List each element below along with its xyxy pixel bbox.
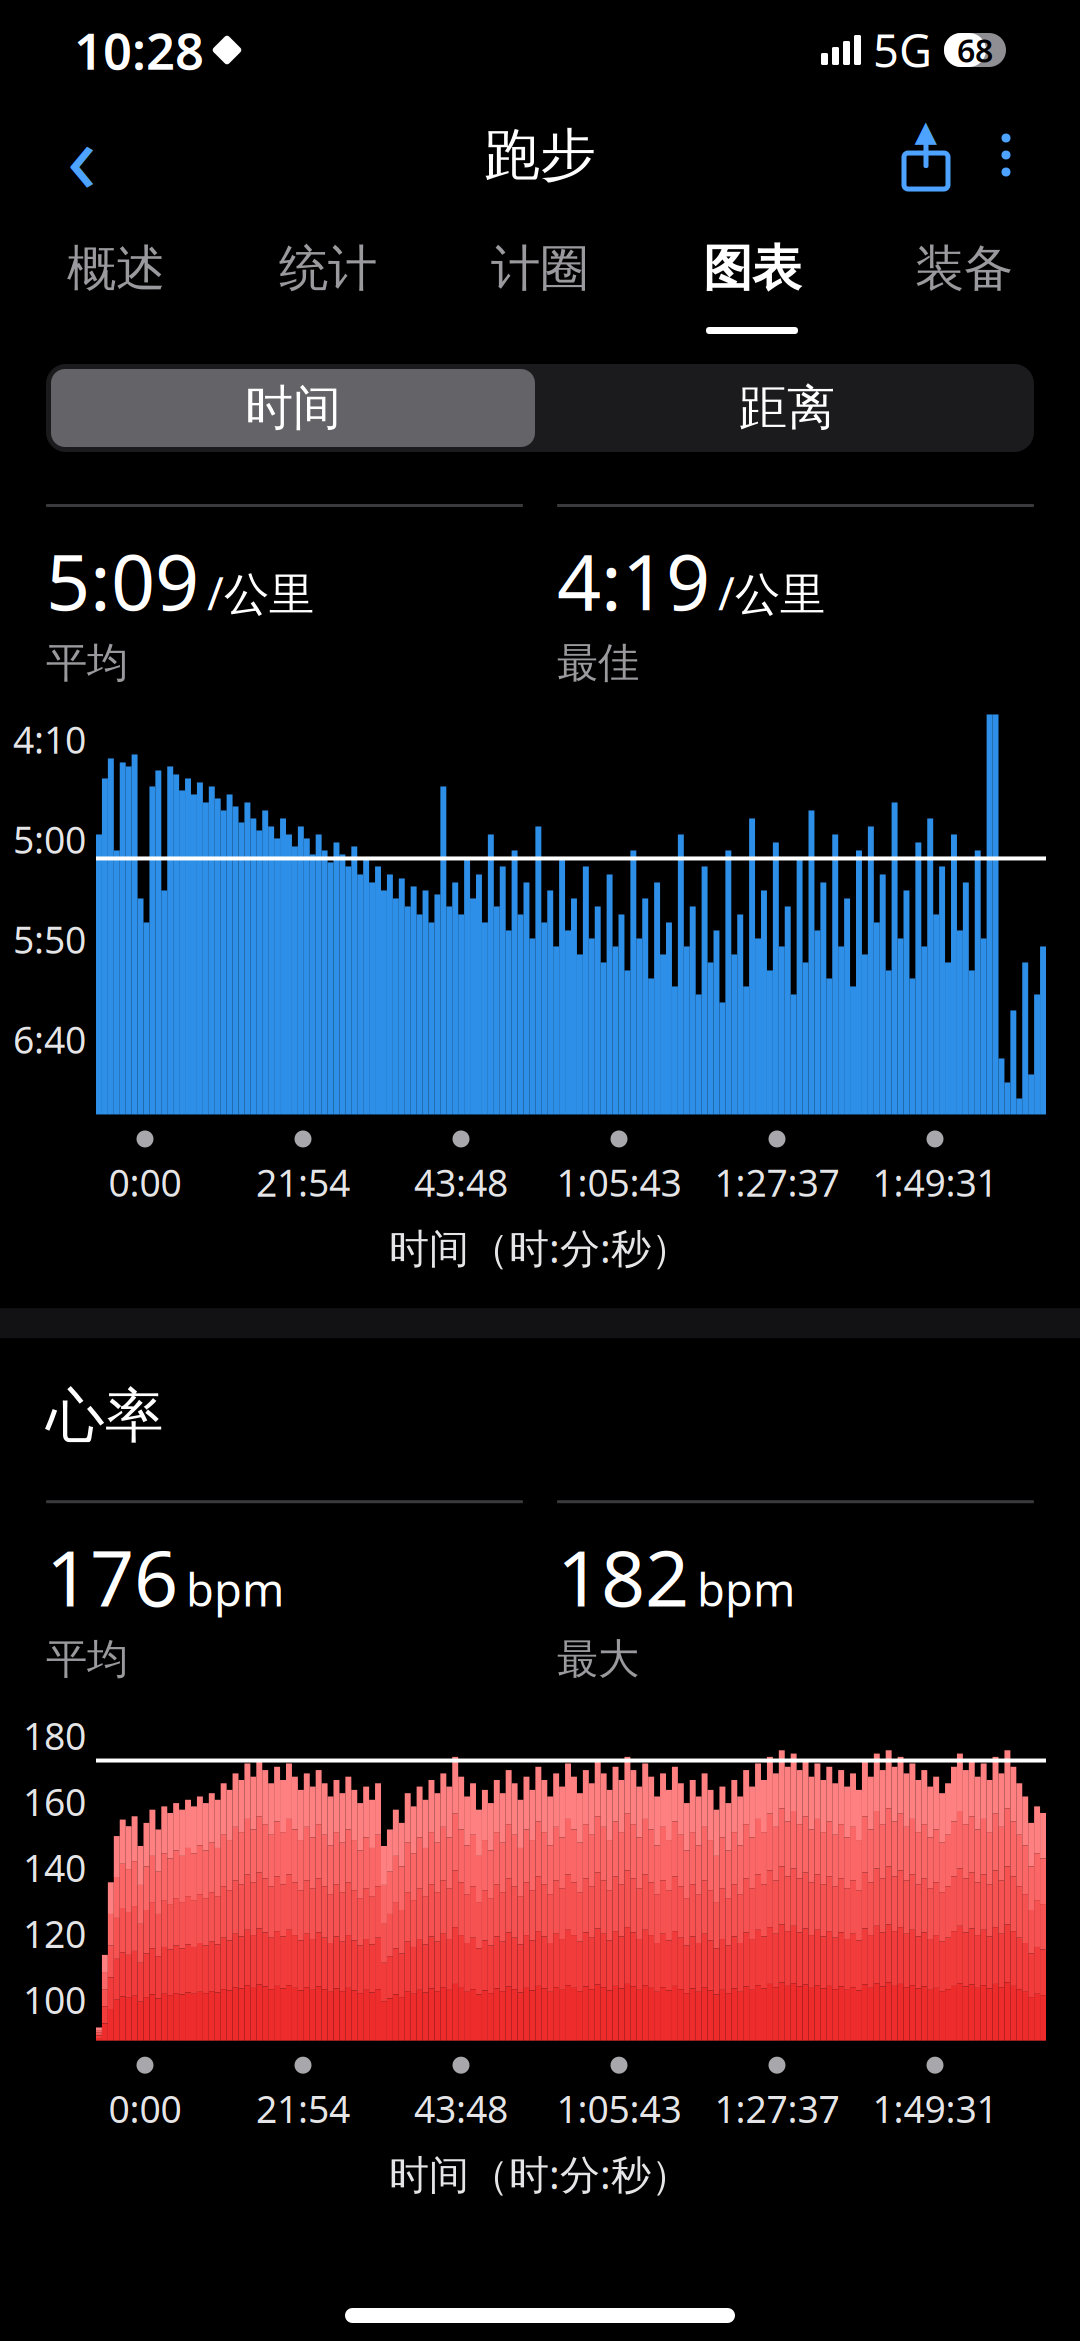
- staticText: 68: [957, 29, 993, 71]
- staticText: 100: [23, 1975, 86, 2024]
- button[interactable]: 概述: [10, 210, 222, 350]
- button[interactable]: 图表: [646, 210, 858, 350]
- button[interactable]: 更多选项: [966, 107, 1046, 203]
- staticText: ‹: [66, 89, 97, 220]
- staticText: ▲: [914, 114, 937, 148]
- staticText: 0:00: [108, 1157, 181, 1207]
- staticText: 1:05:43: [556, 1157, 681, 1207]
- staticText: 心率: [46, 1380, 164, 1452]
- staticText: 图表: [703, 238, 801, 299]
- staticText: 时间: [245, 378, 341, 437]
- staticText: 5:00: [13, 814, 86, 864]
- staticText: 4:10: [13, 714, 86, 764]
- staticText: 计圈: [491, 238, 589, 299]
- staticText: 概述: [67, 238, 165, 299]
- staticText: 21:54: [256, 2084, 350, 2133]
- staticText: 时间（时:分:秒）: [389, 2147, 691, 2200]
- staticText: 160: [23, 1777, 86, 1826]
- staticText: 1:05:43: [556, 2084, 681, 2133]
- staticText: 1:49:31: [872, 1157, 997, 1207]
- staticText: 180: [23, 1711, 86, 1760]
- staticText: 时间（时:分:秒）: [389, 1221, 691, 1274]
- staticText: 5:50: [13, 914, 86, 964]
- staticText: 装备: [915, 238, 1013, 299]
- staticText: bpm: [186, 1559, 284, 1619]
- staticText: 0:00: [108, 2084, 181, 2133]
- staticText: 平均: [46, 1634, 128, 1685]
- staticText: 4:19: [557, 529, 710, 632]
- staticText: 6:40: [13, 1014, 86, 1064]
- button[interactable]: 分享: [886, 107, 966, 203]
- staticText: 距离: [739, 378, 835, 437]
- staticText: 140: [23, 1843, 86, 1892]
- staticText: 平均: [46, 638, 128, 688]
- staticText: 182: [557, 1525, 689, 1628]
- staticText: 1:49:31: [872, 2084, 997, 2133]
- staticText: 43:48: [414, 2084, 508, 2133]
- staticText: 120: [23, 1909, 86, 1958]
- staticText: 21:54: [256, 1157, 350, 1207]
- button[interactable]: 统计: [222, 210, 434, 350]
- staticText: /公里: [718, 563, 825, 623]
- staticText: 43:48: [414, 1157, 508, 1207]
- staticText: 统计: [279, 238, 377, 299]
- staticText: 最佳: [557, 638, 639, 688]
- staticText: 176: [46, 1525, 178, 1628]
- staticText: 1:27:37: [714, 1157, 839, 1207]
- staticText: 5G: [873, 20, 932, 80]
- staticText: /公里: [207, 563, 314, 623]
- staticText: 10:28: [74, 16, 204, 84]
- staticText: 跑步: [484, 121, 596, 189]
- button[interactable]: 距离: [540, 364, 1034, 452]
- staticText: 1:27:37: [714, 2084, 839, 2133]
- button[interactable]: 时间: [46, 364, 540, 452]
- button[interactable]: 装备: [858, 210, 1070, 350]
- staticText: 最大: [557, 1634, 639, 1685]
- staticText: bpm: [697, 1559, 795, 1619]
- button[interactable]: 计圈: [434, 210, 646, 350]
- button[interactable]: 返回: [34, 107, 130, 203]
- staticText: 5:09: [46, 529, 199, 632]
